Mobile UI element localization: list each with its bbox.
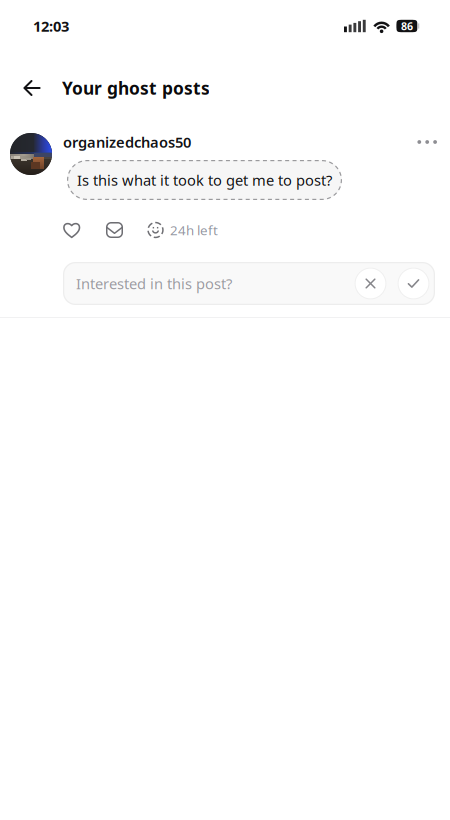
button[interactable]: Accept: [397, 267, 429, 299]
button[interactable]: More options: [407, 131, 435, 153]
button[interactable]: Back: [14, 70, 50, 106]
staticText: Interested in this post?: [76, 274, 232, 293]
staticText: Your ghost posts: [62, 76, 210, 99]
staticText: 12:03: [33, 16, 69, 36]
button[interactable]: Message: [106, 219, 132, 241]
staticText: 86: [401, 19, 413, 33]
staticText: organizedchaos50: [63, 132, 191, 152]
staticText: 24h left: [170, 221, 218, 239]
button[interactable]: Like: [63, 219, 89, 241]
staticText: Is this what it took to get me to post?: [77, 170, 332, 190]
button[interactable]: Dismiss: [354, 267, 386, 299]
